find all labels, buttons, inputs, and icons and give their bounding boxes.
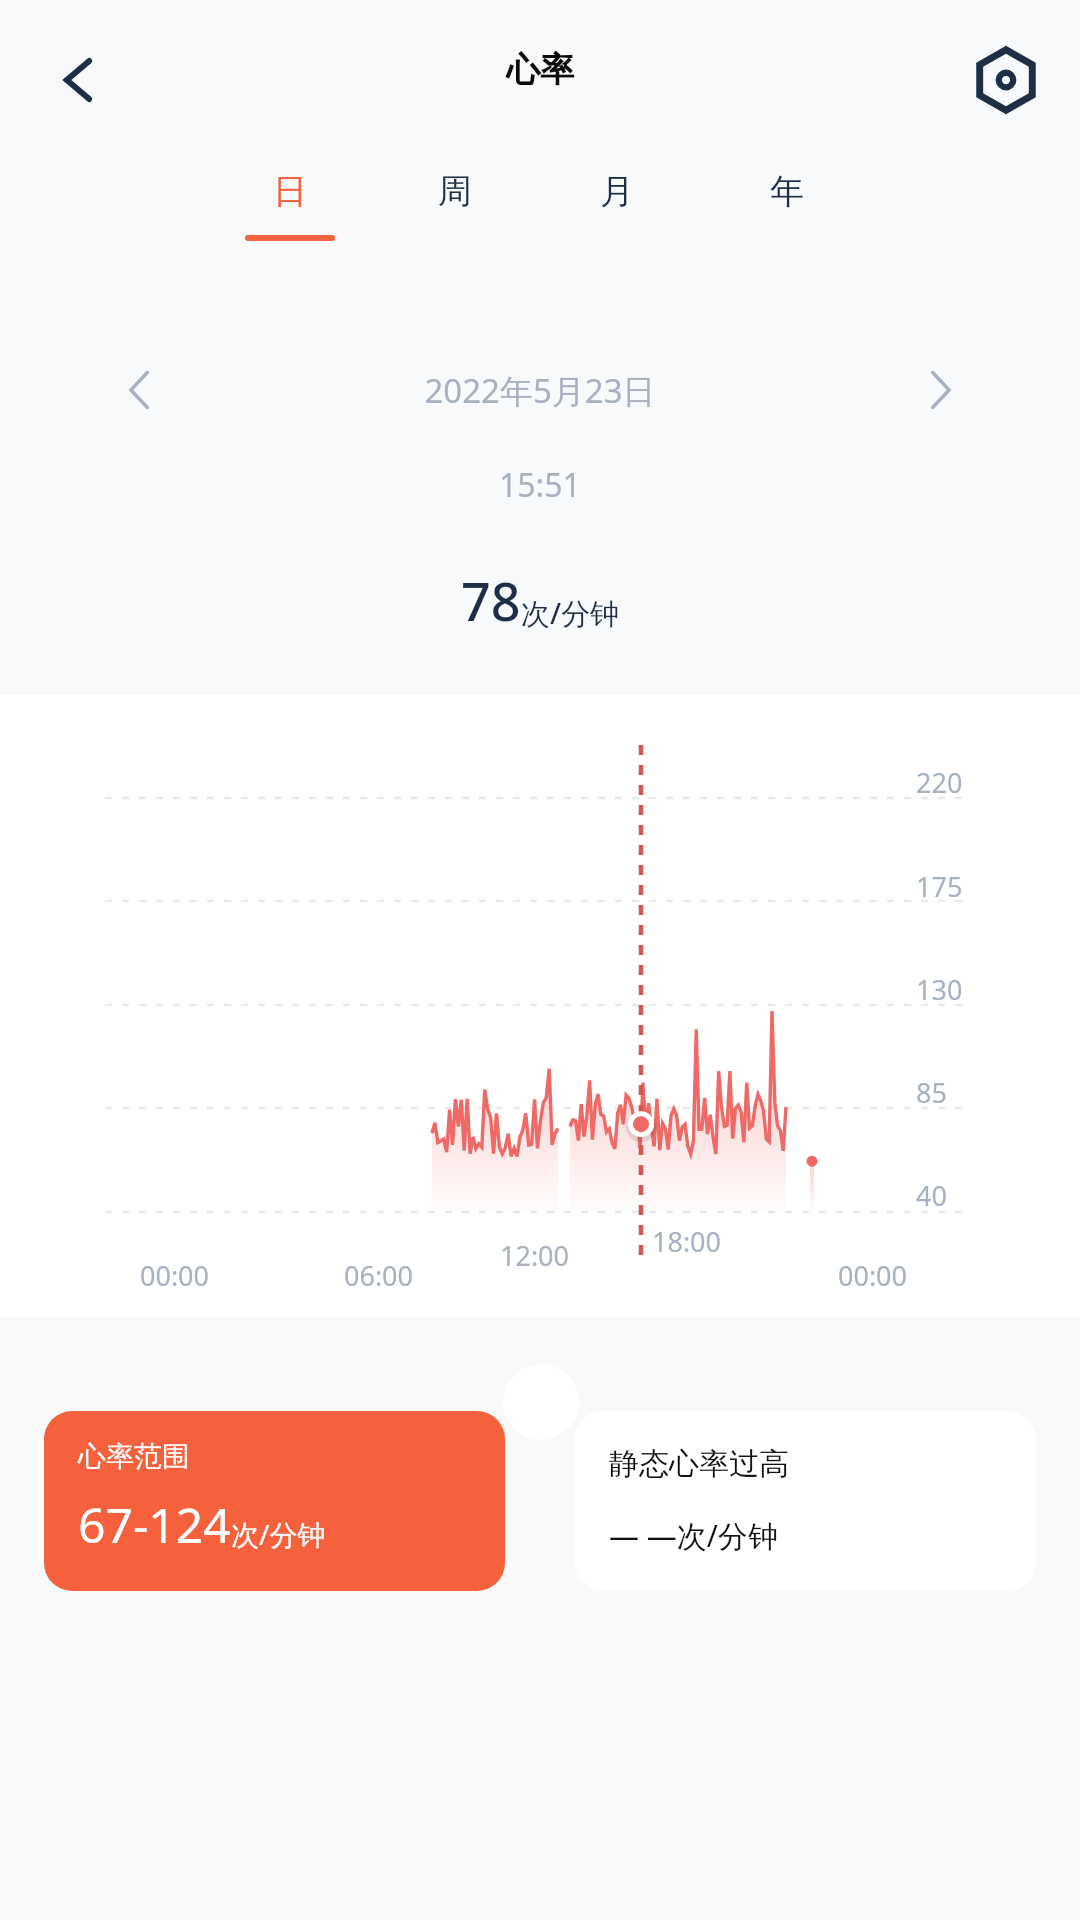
staticText: 静态心率过高 <box>609 1445 789 1483</box>
button[interactable]: 静态心率过高 <box>575 1411 1036 1591</box>
button[interactable]: 月 <box>562 170 672 280</box>
staticText: — —次/分钟 <box>609 1515 778 1556</box>
staticText: 次/分钟 <box>521 593 620 633</box>
staticText: 67-124 <box>78 1492 231 1557</box>
staticText: 175 <box>916 868 963 905</box>
staticText: 85 <box>916 1074 947 1111</box>
staticText: 月 <box>600 170 634 213</box>
button[interactable]: 周 <box>400 170 510 280</box>
button[interactable]: 日 <box>235 170 345 280</box>
button[interactable]: Back <box>32 34 124 126</box>
staticText: 年 <box>770 170 804 213</box>
staticText: 12:00 <box>500 1237 570 1274</box>
button[interactable]: Previous day <box>95 345 185 435</box>
staticText: 00:00 <box>838 1257 908 1294</box>
staticText: 00:00 <box>140 1257 210 1294</box>
staticText: 40 <box>916 1177 947 1214</box>
staticText: 次/分钟 <box>231 1515 326 1553</box>
staticText: 周 <box>438 170 472 213</box>
staticText: 日 <box>273 170 307 213</box>
staticText: 2022年5月23日 <box>424 368 656 413</box>
staticText: 心率范围 <box>78 1439 190 1474</box>
button[interactable]: Next day <box>895 345 985 435</box>
button[interactable]: Settings <box>960 34 1052 126</box>
staticText: 78 <box>461 565 521 636</box>
staticText: 220 <box>916 764 963 801</box>
staticText: 15:51 <box>499 463 581 507</box>
staticText: 130 <box>916 971 963 1008</box>
staticText: 18:00 <box>652 1223 722 1260</box>
staticText: 06:00 <box>344 1257 414 1294</box>
button[interactable]: 年 <box>732 170 842 280</box>
staticText: 心率 <box>506 48 574 91</box>
button[interactable]: 心率范围 <box>44 1411 505 1591</box>
button[interactable]: Scrub handle <box>503 1364 579 1440</box>
